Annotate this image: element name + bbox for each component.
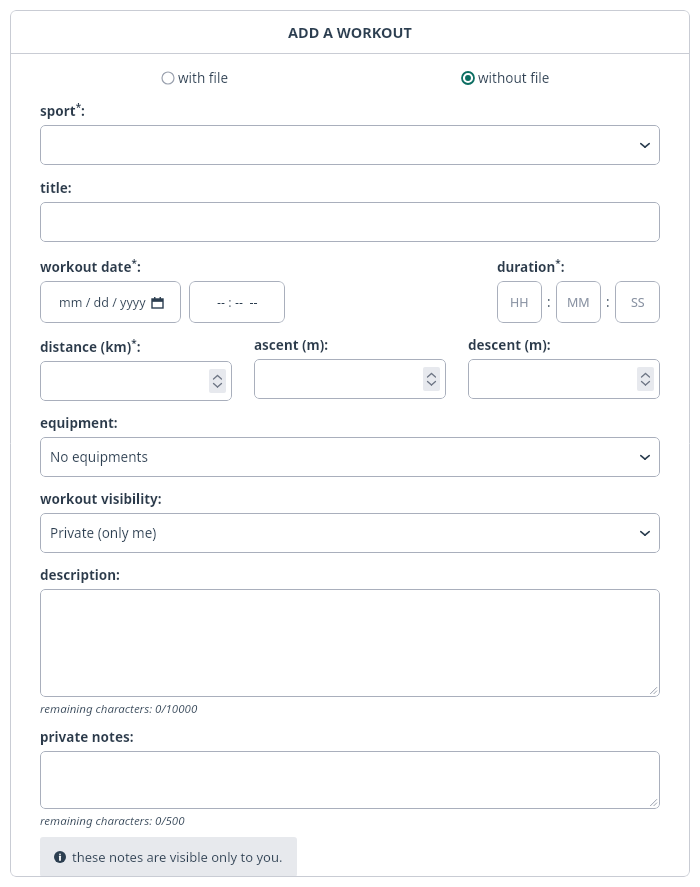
button[interactable] bbox=[40, 589, 660, 697]
button[interactable]: Increment or decrement value bbox=[40, 361, 232, 401]
staticText: Private (only me) bbox=[50, 524, 157, 542]
button[interactable]: these notes are visible only to you. bbox=[40, 837, 297, 877]
button[interactable] bbox=[40, 202, 660, 242]
staticText: : bbox=[606, 293, 610, 311]
button[interactable] bbox=[40, 751, 660, 809]
button[interactable]: mm / dd / yyyy bbox=[40, 281, 181, 323]
button[interactable]: Increment or decrement value bbox=[637, 367, 654, 391]
staticText: SS bbox=[631, 294, 645, 311]
button[interactable]: Increment or decrement value bbox=[423, 367, 440, 391]
button[interactable]: without file bbox=[461, 67, 550, 89]
staticText: title: bbox=[40, 179, 72, 197]
button[interactable] bbox=[40, 125, 660, 165]
button[interactable]: Increment or decrement value bbox=[468, 359, 660, 399]
staticText: No equipments bbox=[50, 448, 148, 466]
staticText: descent (m): bbox=[468, 336, 551, 354]
button[interactable]: HH bbox=[497, 281, 542, 323]
staticText: ascent (m): bbox=[254, 336, 329, 354]
staticText: private notes: bbox=[40, 728, 134, 746]
button[interactable]: with file bbox=[161, 67, 229, 89]
staticText: ADD A WORKOUT bbox=[288, 22, 412, 42]
staticText: with file bbox=[178, 69, 229, 87]
button[interactable]: MM bbox=[556, 281, 601, 323]
button[interactable]: -- : -- -- bbox=[189, 281, 285, 323]
staticText: description: bbox=[40, 566, 120, 584]
staticText: remaining characters: 0/500 bbox=[40, 813, 185, 829]
staticText: duration*: bbox=[497, 256, 565, 276]
button[interactable]: No equipments bbox=[40, 437, 660, 477]
staticText: sport*: bbox=[40, 100, 85, 120]
button[interactable]: Private (only me) bbox=[40, 513, 660, 553]
staticText: distance (km)*: bbox=[40, 336, 141, 356]
staticText: MM bbox=[567, 294, 590, 311]
staticText: without file bbox=[478, 69, 550, 87]
staticText: mm / dd / yyyy bbox=[59, 294, 146, 311]
button[interactable]: SS bbox=[615, 281, 660, 323]
staticText: equipment: bbox=[40, 414, 118, 432]
staticText: these notes are visible only to you. bbox=[72, 848, 283, 866]
staticText: HH bbox=[510, 294, 529, 311]
button[interactable]: Increment or decrement value bbox=[254, 359, 446, 399]
staticText: workout visibility: bbox=[40, 490, 162, 508]
button[interactable]: Increment or decrement value bbox=[209, 369, 226, 393]
staticText: remaining characters: 0/10000 bbox=[40, 701, 198, 717]
staticText: workout date*: bbox=[40, 256, 141, 276]
staticText: -- : -- -- bbox=[217, 294, 258, 311]
staticText: : bbox=[547, 293, 551, 311]
